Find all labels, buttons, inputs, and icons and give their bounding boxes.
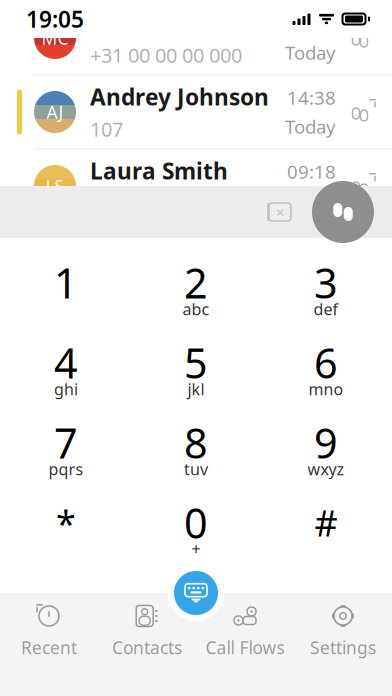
button[interactable]: Call Flows: [196, 601, 294, 661]
staticText: pqrs: [48, 458, 83, 480]
staticText: 1: [54, 255, 78, 310]
staticText: 0: [184, 495, 208, 550]
button[interactable]: MC: [0, 1, 392, 74]
button[interactable]: Recent: [0, 601, 98, 661]
staticText: jkl: [187, 378, 204, 400]
button[interactable]: 4: [1, 330, 131, 410]
button[interactable]: Settings: [294, 601, 392, 661]
staticText: wxyz: [307, 458, 344, 480]
staticText: +31 00 00 00 000: [90, 42, 242, 68]
button[interactable]: #: [261, 490, 391, 570]
button[interactable]: *: [1, 490, 131, 570]
button[interactable]: 9: [261, 410, 391, 490]
button[interactable]: AJ: [0, 75, 392, 148]
staticText: LS: [45, 174, 64, 197]
staticText: Settings: [310, 636, 376, 659]
staticText: [64, 298, 68, 320]
staticText: Today: [285, 40, 336, 65]
button[interactable]: LS: [0, 149, 392, 222]
button[interactable]: 3: [261, 250, 391, 330]
staticText: *: [56, 499, 76, 546]
staticText: tuv: [184, 458, 208, 480]
staticText: Contacts: [112, 636, 182, 659]
staticText: #: [314, 499, 337, 546]
button[interactable]: 0: [131, 490, 261, 570]
staticText: 9: [314, 415, 338, 470]
button[interactable]: Call: [312, 181, 374, 243]
staticText: 107: [90, 116, 123, 142]
staticText: +: [191, 538, 200, 560]
staticText: 6: [314, 335, 338, 390]
staticText: Call Flows: [205, 636, 284, 659]
staticText: AJ: [46, 100, 63, 123]
staticText: 09:18: [287, 159, 336, 184]
staticText: 5: [184, 335, 208, 390]
staticText: 14:38: [287, 85, 336, 110]
staticText: Laura Smith: [90, 156, 228, 186]
staticText: ghi: [54, 378, 78, 400]
button[interactable]: 8: [131, 410, 261, 490]
staticText: mno: [308, 378, 343, 400]
staticText: abc: [182, 298, 209, 320]
staticText: 7: [54, 415, 78, 470]
staticText: 2: [184, 255, 208, 310]
button[interactable]: 5: [131, 330, 261, 410]
staticText: Today: [285, 114, 336, 139]
staticText: Today: [285, 188, 336, 213]
button[interactable]: 7: [1, 410, 131, 490]
button[interactable]: 1: [1, 250, 131, 330]
button[interactable]: 2: [131, 250, 261, 330]
staticText: ×: [276, 202, 284, 222]
staticText: 15:00: [287, 11, 336, 36]
button[interactable]: Contacts: [98, 601, 196, 661]
button[interactable]: Hide keypad: [168, 565, 224, 621]
staticText: 8: [184, 415, 208, 470]
staticText: 19:05: [26, 4, 84, 34]
button[interactable]: Delete: [254, 187, 304, 237]
staticText: Recent: [21, 636, 77, 659]
staticText: def: [313, 298, 338, 320]
button[interactable]: 6: [261, 330, 391, 410]
staticText: MC: [41, 26, 68, 49]
staticText: 4: [54, 335, 78, 390]
staticText: 3: [314, 255, 338, 310]
staticText: Andrey Johnson: [90, 82, 269, 112]
